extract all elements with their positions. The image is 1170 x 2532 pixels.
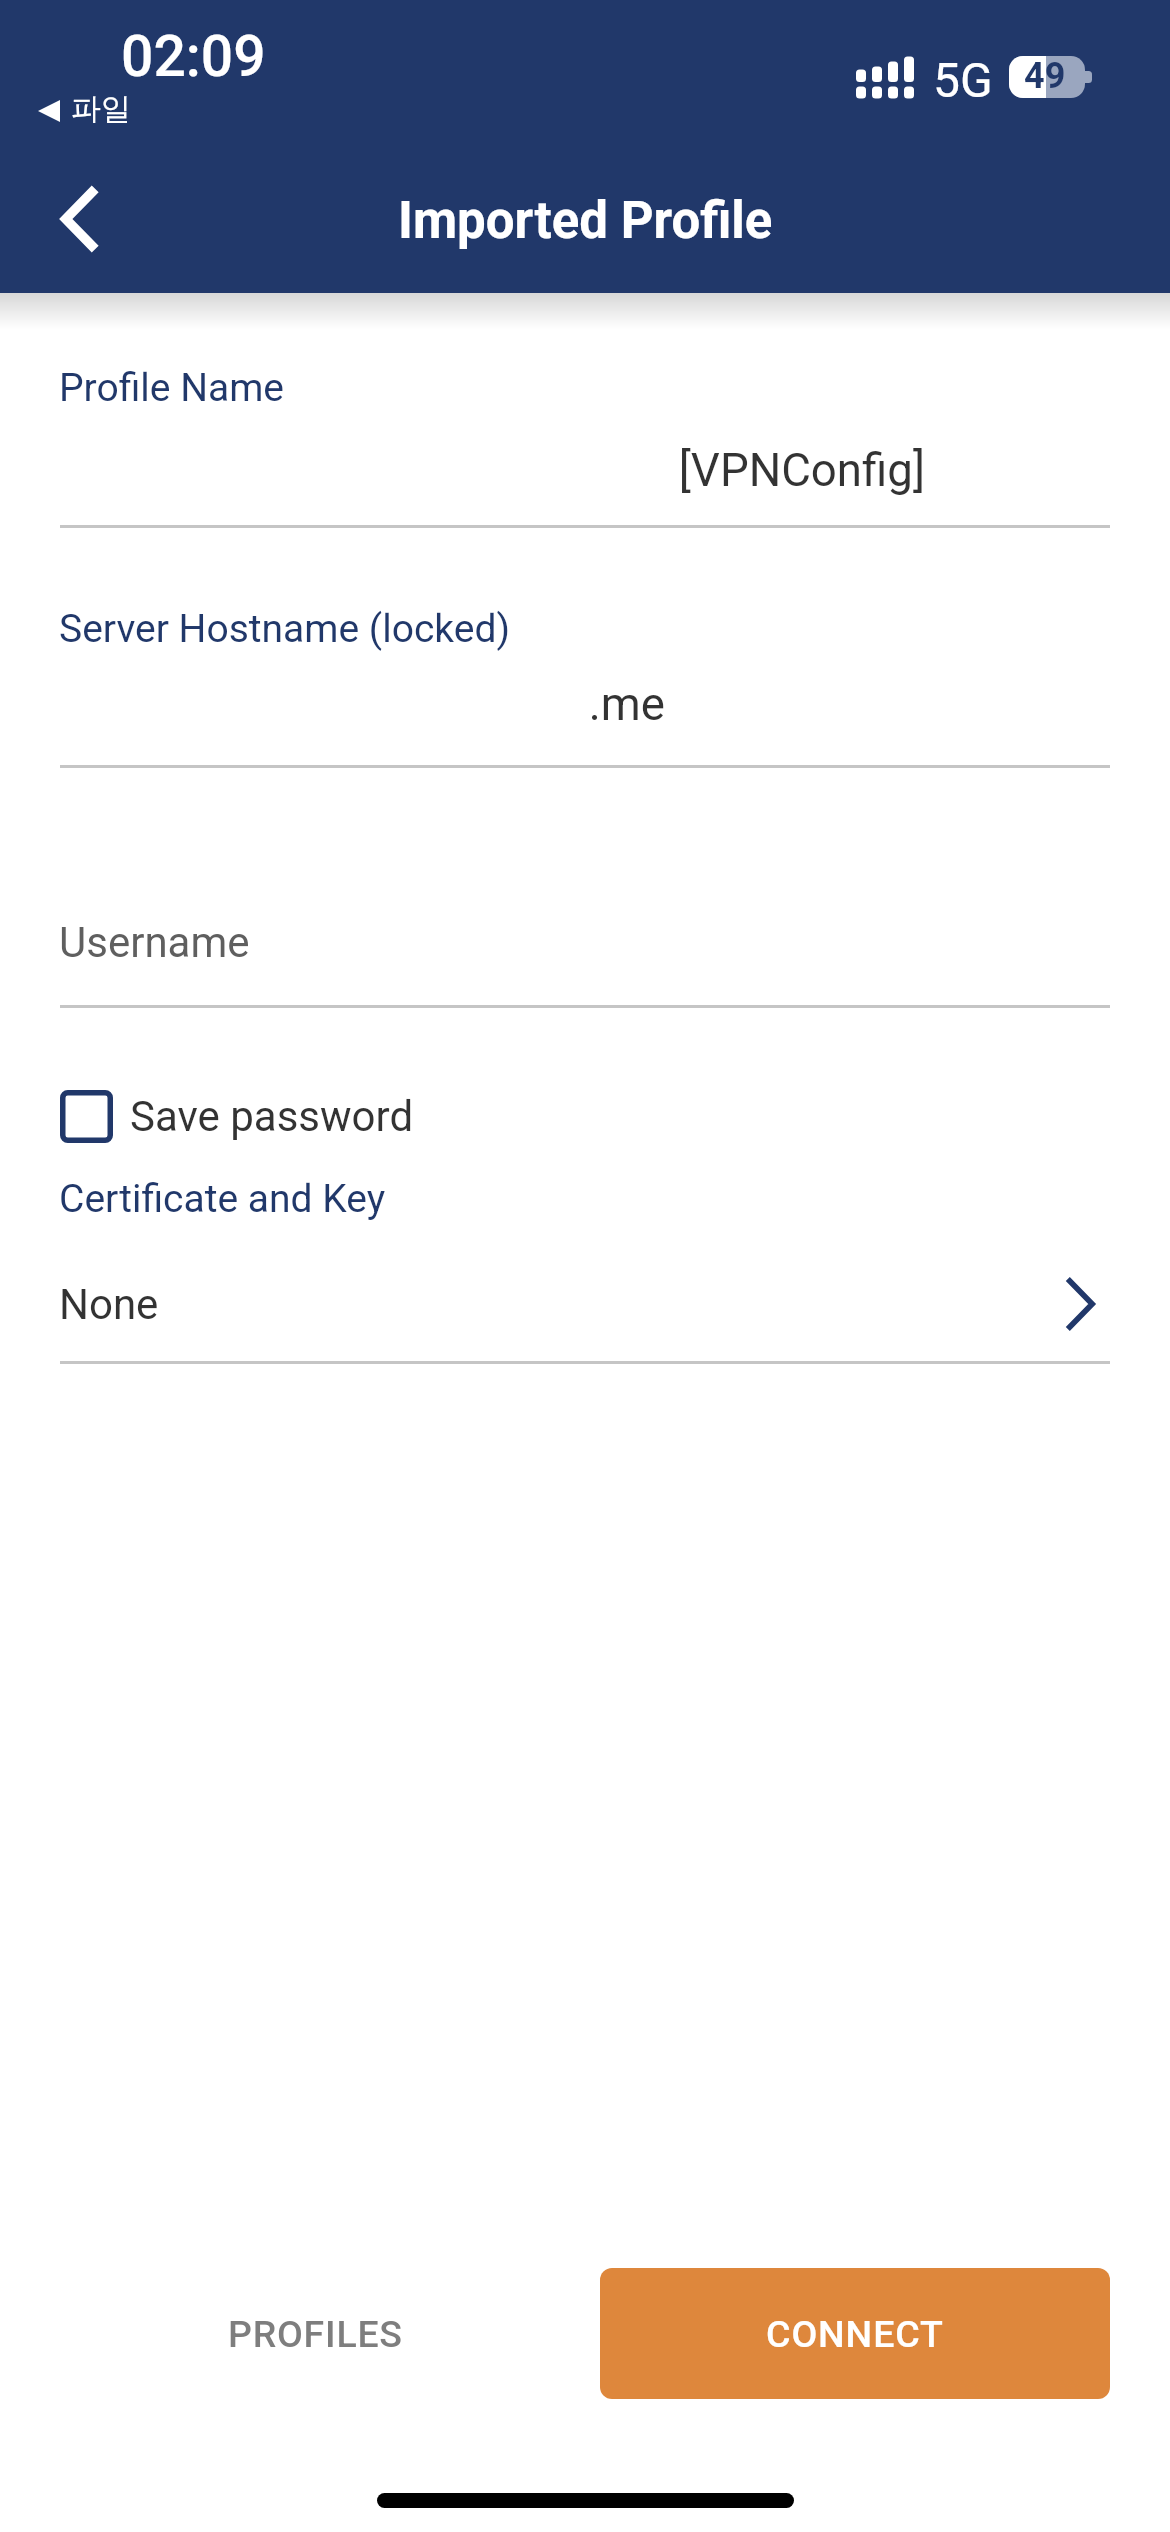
button[interactable]: Back — [14, 153, 146, 285]
button[interactable]: None — [59, 1258, 1110, 1350]
staticText: 02:09 — [121, 23, 266, 90]
staticText: Profile Name — [59, 365, 285, 411]
button[interactable]: CONNECT — [600, 2268, 1110, 2399]
staticText: PROFILES — [228, 2312, 403, 2356]
staticText: .me — [0, 678, 665, 731]
staticText: Username — [59, 918, 250, 967]
button[interactable]: PROFILES — [60, 2268, 570, 2399]
staticText: 파일 — [71, 90, 131, 128]
staticText: 5G — [933, 52, 993, 108]
staticText: Certificate and Key — [59, 1176, 386, 1222]
staticText: None — [59, 1280, 159, 1329]
staticText: [VPNConfig] — [0, 444, 925, 497]
staticText: Imported Profile — [398, 191, 773, 251]
staticText: 49 — [1024, 56, 1066, 97]
staticText: Save password — [130, 1092, 414, 1141]
button[interactable]: Save password — [52, 1081, 414, 1151]
staticText: CONNECT — [766, 2312, 944, 2356]
staticText: Server Hostname (locked) — [59, 606, 510, 652]
